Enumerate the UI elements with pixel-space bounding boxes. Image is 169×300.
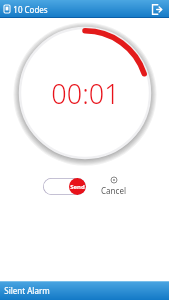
staticText: 10 Codes xyxy=(13,4,48,15)
staticText: Cancel xyxy=(101,185,126,196)
button[interactable]: Slide to send xyxy=(43,178,86,195)
button[interactable]: Cancel xyxy=(101,177,126,196)
staticText: Send xyxy=(70,183,85,191)
button[interactable]: Log out xyxy=(149,2,163,16)
button[interactable]: Silent Alarm xyxy=(0,281,169,300)
staticText: 00:01 xyxy=(51,75,120,112)
staticText: Silent Alarm xyxy=(4,285,50,296)
